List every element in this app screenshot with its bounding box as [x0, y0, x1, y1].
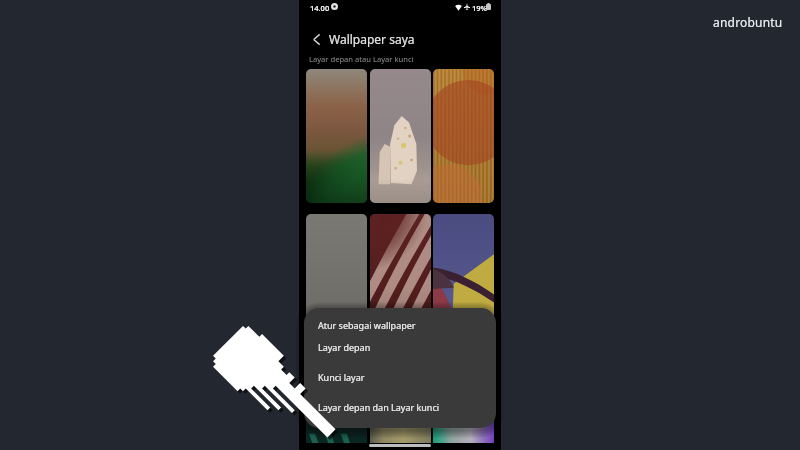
button[interactable]: Layar depan dan Layar kunci — [304, 397, 496, 416]
button[interactable]: Layar depan — [304, 337, 496, 356]
button[interactable] — [306, 214, 367, 348]
staticText: 14.00 — [310, 3, 330, 13]
button[interactable] — [370, 69, 431, 203]
button[interactable] — [370, 360, 431, 443]
staticText: Layar depan atau Layar kunci — [309, 54, 414, 64]
staticText: Layar depan dan Layar kunci — [318, 401, 440, 413]
button[interactable] — [306, 69, 367, 203]
button[interactable] — [433, 214, 494, 348]
button[interactable] — [306, 360, 367, 443]
staticText: Kunci layar — [318, 371, 365, 383]
button[interactable] — [370, 214, 431, 348]
staticText: Atur sebagai wallpaper — [318, 319, 416, 331]
button[interactable]: Atur sebagai wallpaper — [304, 315, 496, 334]
button[interactable]: Back — [305, 28, 327, 50]
staticText: Layar depan — [318, 341, 371, 353]
staticText: Wallpaper saya — [329, 31, 415, 47]
staticText: androbuntu — [713, 14, 783, 30]
button[interactable]: Kunci layar — [304, 367, 496, 386]
button[interactable] — [433, 69, 494, 203]
staticText: 19% — [472, 3, 487, 13]
button[interactable] — [433, 360, 494, 443]
